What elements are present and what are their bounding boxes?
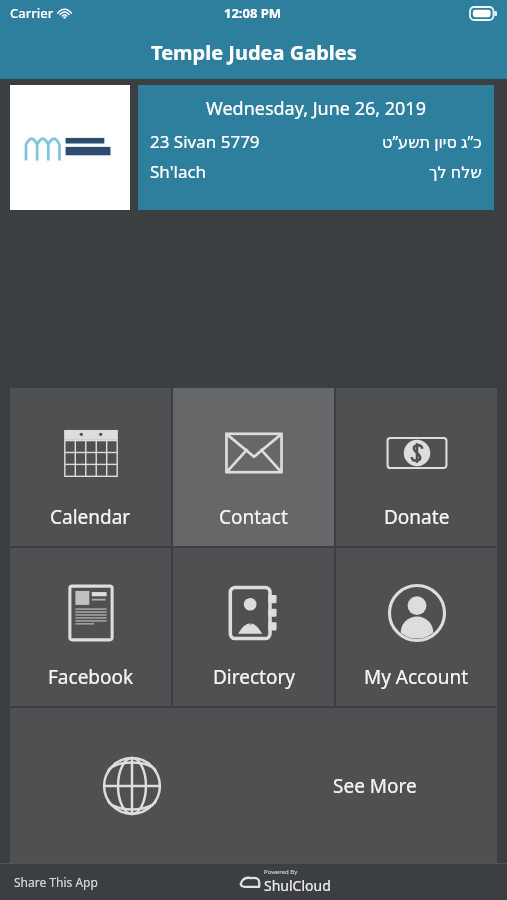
staticText: Facebook [48,664,134,690]
staticText: Sh'lach [150,160,207,183]
staticText: Directory [213,664,295,690]
staticText: שלח לך [429,161,482,183]
staticText: See More [333,773,417,799]
staticText: ShulCloud [264,876,331,895]
button[interactable]: See More [10,708,497,863]
button[interactable]: Facebook [10,548,171,706]
staticText: 12:08 PM [224,4,282,22]
button[interactable]: Powered by ShulCloud [239,868,331,895]
button[interactable]: Directory [173,548,334,706]
staticText: 23 Sivan 5779 [150,130,260,153]
staticText: כ”ג סיון תשע”ט [382,131,482,153]
staticText: Donate [384,504,450,530]
button[interactable]: Contact [173,388,334,546]
button[interactable]: Donate [336,388,497,546]
staticText: Calendar [50,504,131,530]
button[interactable]: Share This App [14,874,98,890]
staticText: Temple Judea Gables [151,39,357,66]
staticText: Wednesday, June 26, 2019 [150,96,482,121]
staticText: Share This App [14,874,98,890]
button[interactable]: My Account [336,548,497,706]
button[interactable]: Wednesday, June 26, 2019 [138,85,494,210]
staticText: My Account [364,664,469,690]
button[interactable]: Temple Judea logo [10,85,130,210]
staticText: Powered By [264,868,298,876]
staticText: Contact [219,504,288,530]
staticText: Carrier [10,4,54,22]
button[interactable]: Calendar [10,388,171,546]
